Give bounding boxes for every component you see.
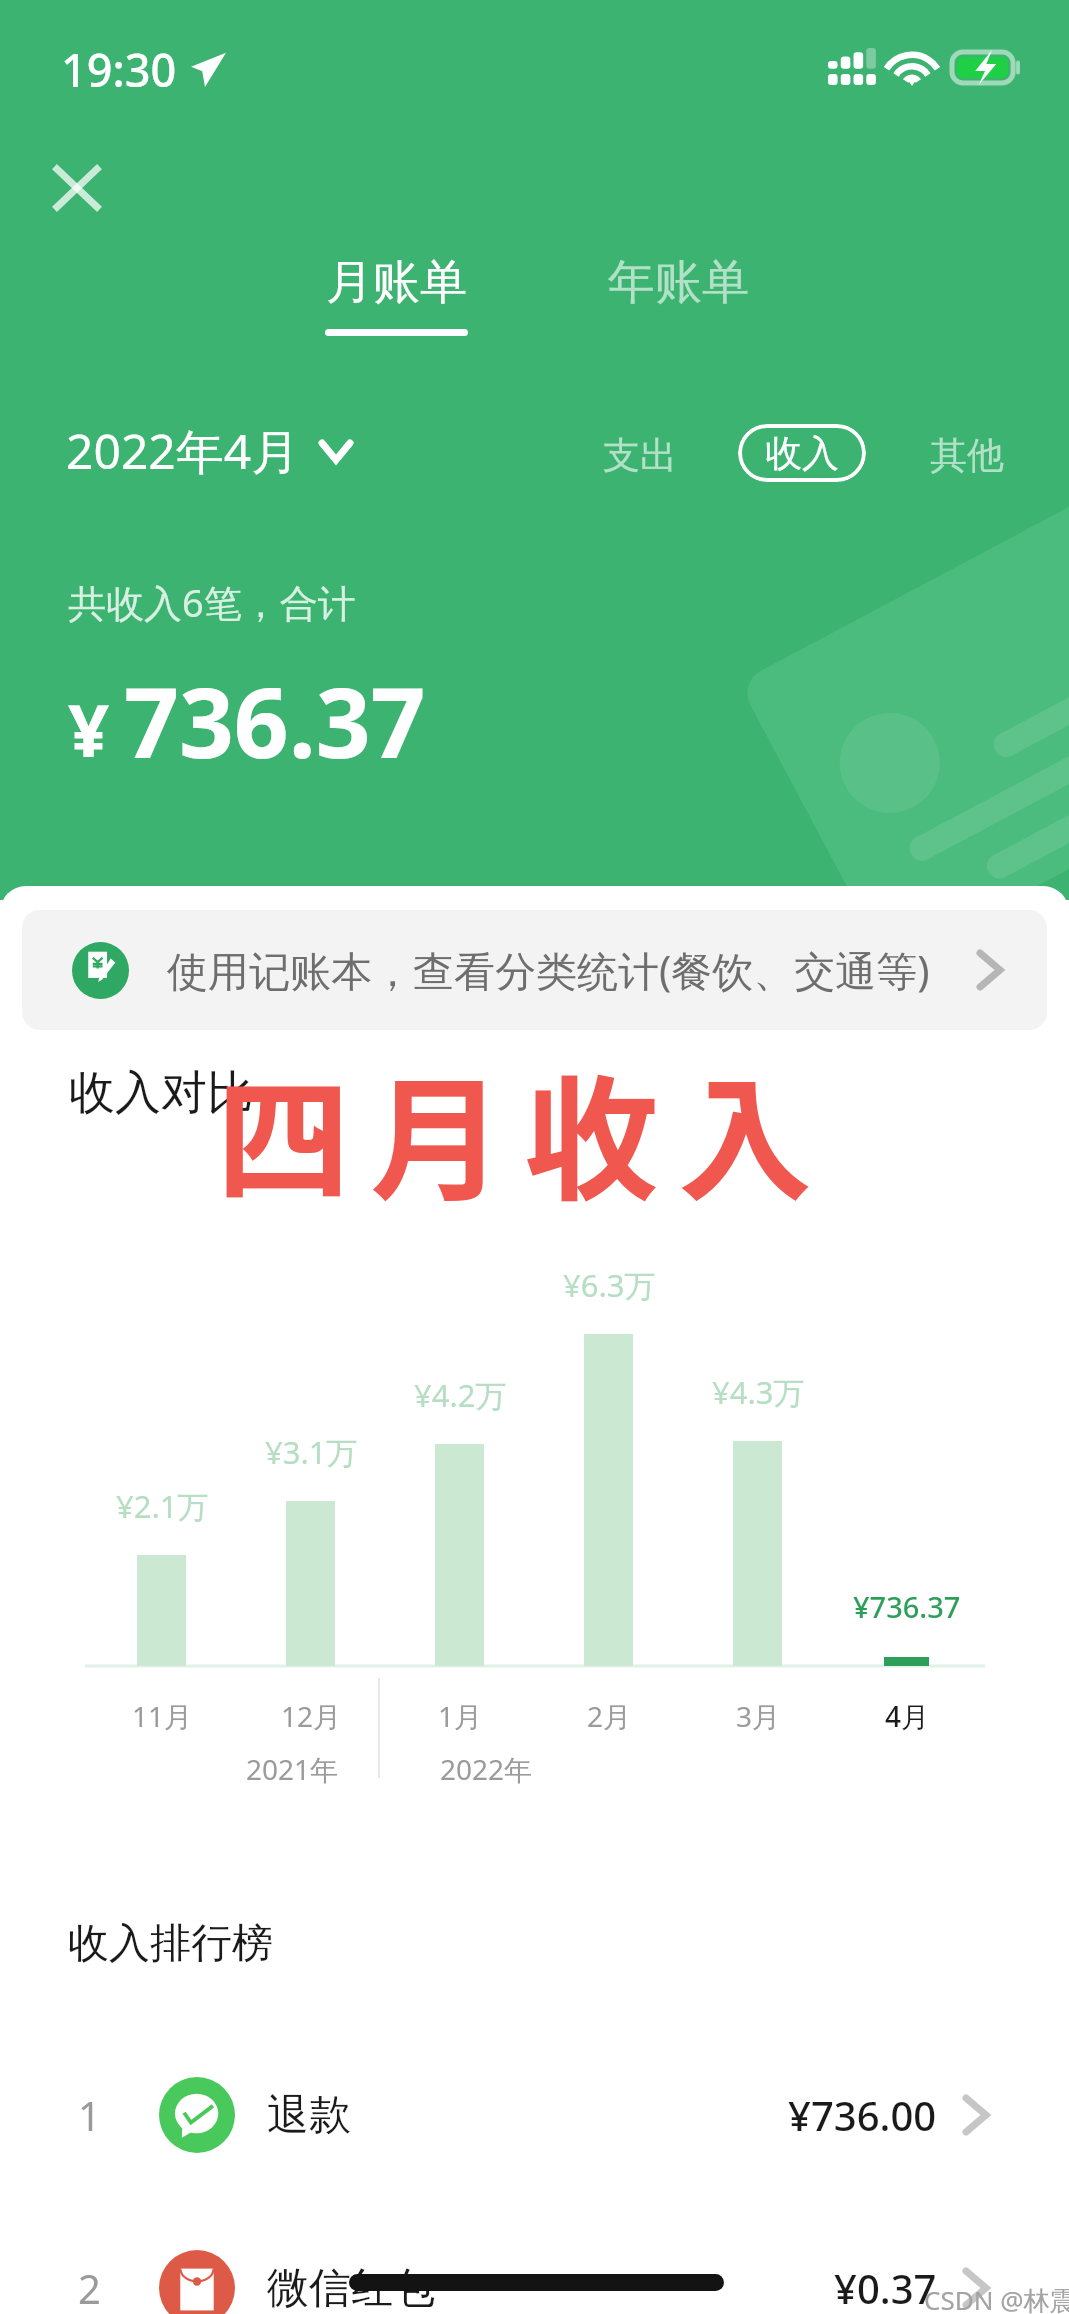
staticText: 1 (78, 2088, 101, 2142)
button[interactable]: 年账单 (592, 253, 764, 329)
staticText: ¥736.37 (853, 1587, 961, 1626)
staticText: 3月 (736, 1697, 781, 1735)
button[interactable]: 2022年4月 (66, 411, 350, 491)
staticText: 月账单 (326, 253, 467, 312)
staticText: 19:30 (61, 39, 177, 100)
staticText: 收入排行榜 (68, 1918, 273, 1970)
staticText: 2 (78, 2261, 101, 2314)
staticText: 4月 (885, 1697, 930, 1735)
button[interactable]: 1 (0, 2055, 1069, 2175)
button[interactable]: 其他 (914, 415, 1020, 495)
staticText: 收入对比 (69, 1064, 253, 1122)
button[interactable]: 支出 (587, 415, 693, 495)
staticText: 736.37 (124, 655, 426, 786)
staticText: ¥2.1万 (116, 1485, 209, 1527)
staticText: 2022年 (440, 1750, 533, 1788)
staticText: 12月 (281, 1697, 342, 1735)
staticText: 2022年4月 (66, 418, 300, 484)
staticText: 四月收入 (216, 1034, 833, 1228)
staticText: 收入 (765, 430, 839, 477)
staticText: ¥6.3万 (563, 1264, 656, 1306)
button[interactable]: 收入 (738, 424, 866, 482)
button[interactable]: 月账单 (310, 253, 482, 336)
staticText: ¥0.37 (834, 2261, 937, 2314)
staticText: ¥736.00 (788, 2088, 937, 2142)
staticText: 2021年 (246, 1750, 339, 1788)
staticText: 11月 (132, 1697, 193, 1735)
staticText: CSDN @林震南 (924, 2282, 1069, 2314)
staticText: 年账单 (608, 253, 749, 312)
staticText: 1月 (438, 1697, 483, 1735)
staticText: ¥4.3万 (712, 1371, 805, 1413)
button[interactable]: 使用记账本，查看分类统计(餐饮、交通等) (22, 910, 1047, 1030)
button[interactable]: 2 (0, 2228, 1069, 2314)
staticText: ¥ (68, 680, 110, 778)
staticText: 微信红包 (267, 2262, 435, 2314)
staticText: ¥4.2万 (414, 1374, 507, 1416)
staticText: 2月 (587, 1697, 632, 1735)
staticText: ¥3.1万 (265, 1431, 358, 1473)
staticText: 使用记账本，查看分类统计(餐饮、交通等) (167, 942, 930, 998)
staticText: 退款 (267, 2089, 351, 2142)
staticText: 共收入6笔，合计 (68, 576, 356, 628)
button[interactable]: Close (39, 150, 115, 226)
staticText: 支出 (603, 432, 677, 479)
staticText: 其他 (930, 432, 1004, 479)
